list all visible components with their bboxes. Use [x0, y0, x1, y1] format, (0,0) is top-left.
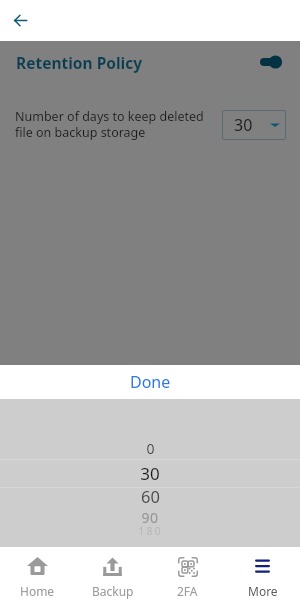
staticText: Home	[20, 583, 55, 599]
button[interactable]: Done	[0, 365, 300, 399]
button[interactable]: Retention Policy	[16, 50, 143, 74]
staticText: Retention Policy	[16, 52, 143, 73]
staticText: 60	[141, 485, 160, 507]
staticText: 30	[234, 114, 253, 136]
staticText: Done	[130, 371, 171, 393]
staticText: 180	[138, 524, 163, 538]
button[interactable]: More	[225, 547, 300, 610]
button[interactable]: Backup	[75, 547, 150, 610]
button[interactable]: Back	[3, 3, 37, 37]
button[interactable]: 2FA	[150, 547, 225, 610]
staticText: 90	[141, 508, 159, 527]
staticText: More	[248, 583, 278, 599]
button[interactable]: Toggle retention policy	[258, 51, 286, 73]
staticText: Number of days to keep deleted file on b…	[15, 108, 204, 140]
staticText: 30	[140, 462, 160, 485]
staticText: 2FA	[177, 583, 198, 599]
button[interactable]: 30	[222, 110, 286, 140]
staticText: Backup	[92, 583, 134, 599]
staticText: 0	[146, 439, 155, 458]
button[interactable]: Home	[0, 547, 75, 610]
button[interactable]: 0	[0, 399, 300, 547]
